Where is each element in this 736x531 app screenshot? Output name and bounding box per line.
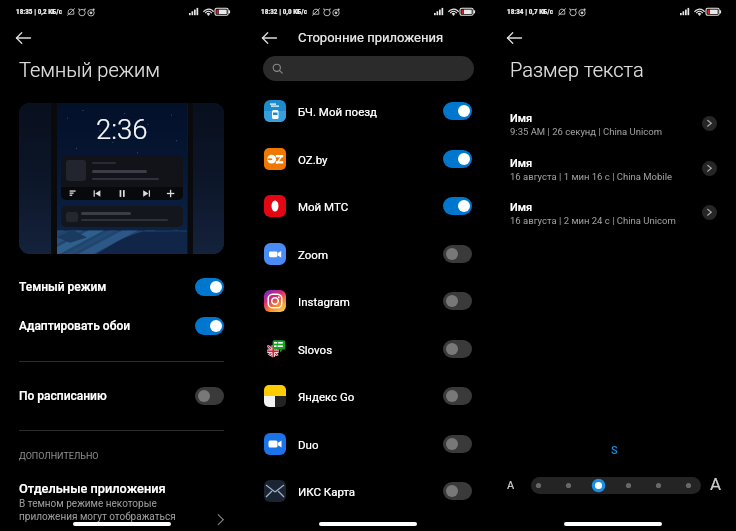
button[interactable]: Text size slider <box>531 477 701 494</box>
button[interactable]: Enabled <box>443 150 472 168</box>
button[interactable]: Slovos <box>245 325 491 373</box>
staticText: Отдельные приложения <box>19 481 166 496</box>
staticText: Duo <box>298 438 319 451</box>
staticText: S <box>611 444 618 457</box>
staticText: A <box>507 479 515 492</box>
button[interactable]: Мой МТС <box>245 182 491 230</box>
button[interactable]: Disabled <box>195 387 224 405</box>
button[interactable]: Disabled <box>443 387 472 405</box>
staticText: Мой МТС <box>298 200 349 213</box>
staticText: Яндекс Go <box>298 390 355 403</box>
staticText: 18:35 | 0,2 КБ/c <box>16 7 62 15</box>
staticText: Размер текста <box>510 58 644 81</box>
staticText: БЧ. Мой поезд <box>298 105 378 118</box>
button[interactable]: Имя <box>491 156 736 201</box>
staticText: Имя <box>510 157 533 170</box>
button[interactable]: Details <box>702 116 717 131</box>
staticText: Slovos <box>298 343 333 356</box>
button[interactable]: Enabled <box>195 278 224 296</box>
staticText: ИКС Карта <box>298 485 356 498</box>
button[interactable]: Disabled <box>443 340 472 358</box>
staticText: A <box>710 474 722 494</box>
button[interactable]: Instagram <box>245 277 491 325</box>
button[interactable]: Enabled <box>443 102 472 120</box>
button[interactable]: Enabled <box>443 197 472 215</box>
button[interactable]: Имя <box>491 111 736 156</box>
staticText: По расписанию <box>19 389 107 403</box>
staticText: 2:36 <box>96 113 148 145</box>
staticText: Zoom <box>298 248 328 261</box>
button[interactable]: Яндекс Go <box>245 372 491 420</box>
staticText: Темный режим <box>19 58 160 81</box>
button[interactable]: Disabled <box>443 482 472 500</box>
staticText: В темном режиме некоторые приложения мог… <box>19 498 176 523</box>
button[interactable]: Back <box>10 24 38 52</box>
staticText: 9:35 AM | 26 секунд | China Unicom <box>510 126 663 137</box>
button[interactable]: Zoom <box>245 230 491 278</box>
button[interactable]: Details <box>702 161 717 176</box>
button[interactable]: Search <box>263 56 474 81</box>
staticText: 18:34 | 0,7 КБ/c <box>507 7 553 15</box>
button[interactable]: Back <box>256 24 284 52</box>
button[interactable]: Disabled <box>443 245 472 263</box>
staticText: Темный режим <box>19 280 107 294</box>
button[interactable]: Open <box>212 505 234 527</box>
button[interactable]: Duo <box>245 420 491 468</box>
staticText: OZ.by <box>298 153 328 166</box>
staticText: Адаптировать обои <box>19 319 131 333</box>
staticText: ДОПОЛНИТЕЛЬНО <box>19 451 99 462</box>
staticText: Instagram <box>298 295 350 308</box>
staticText: 16 августа | 1 мин 16 с | China Mobile <box>510 171 673 182</box>
button[interactable]: OZ.by <box>245 135 491 183</box>
button[interactable]: Disabled <box>443 292 472 310</box>
button[interactable]: Disabled <box>443 435 472 453</box>
staticText: 18:32 | 0,0 КБ/c <box>261 7 307 15</box>
staticText: 16 августа | 2 мин 24 с | China Unicom <box>510 215 676 226</box>
button[interactable]: ИКС Карта <box>245 467 491 515</box>
button[interactable]: Details <box>702 205 717 220</box>
button[interactable]: БЧ. Мой поезд <box>245 87 491 135</box>
button[interactable]: Back <box>501 24 529 52</box>
staticText: Имя <box>510 112 533 125</box>
button[interactable]: Имя <box>491 200 736 245</box>
button[interactable]: Enabled <box>195 317 224 335</box>
staticText: Сторонние приложения <box>298 30 444 45</box>
staticText: Имя <box>510 201 533 214</box>
